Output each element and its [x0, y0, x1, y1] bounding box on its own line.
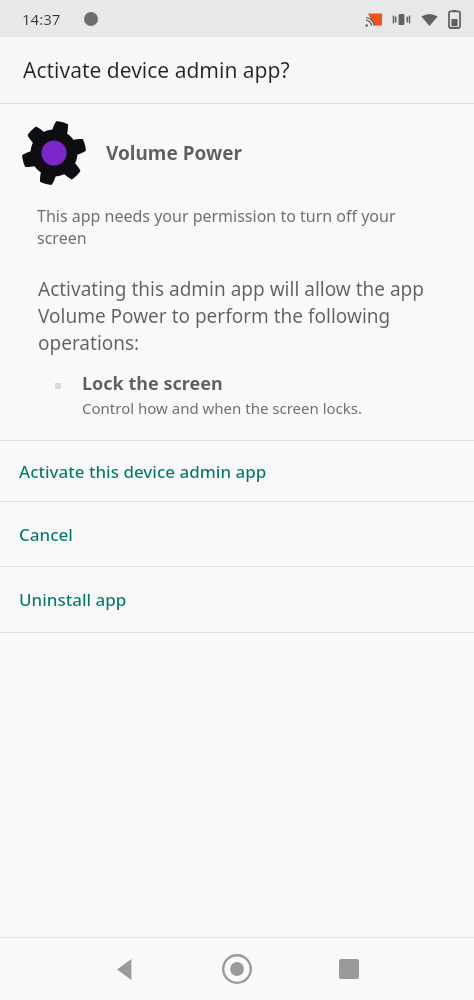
button[interactable]: Activate this device admin app — [0, 441, 474, 501]
staticText: Activate this device admin app — [19, 460, 267, 483]
button[interactable]: Home — [213, 945, 261, 993]
button[interactable]: Recent apps — [325, 945, 373, 993]
staticText: Activate device admin app? — [23, 56, 290, 85]
button[interactable]: Back — [101, 945, 149, 993]
staticText: Lock the screen — [82, 371, 223, 396]
staticText: Cancel — [19, 523, 73, 546]
staticText: Activating this admin app will allow the… — [38, 276, 444, 356]
staticText: This app needs your permission to turn o… — [37, 205, 434, 249]
staticText: 14:37 — [22, 9, 61, 29]
button[interactable]: Uninstall app — [0, 567, 474, 632]
staticText: Volume Power — [106, 140, 243, 166]
button[interactable]: Cancel — [0, 502, 474, 566]
staticText: Uninstall app — [19, 588, 127, 611]
staticText: Control how and when the screen locks. — [82, 398, 362, 418]
